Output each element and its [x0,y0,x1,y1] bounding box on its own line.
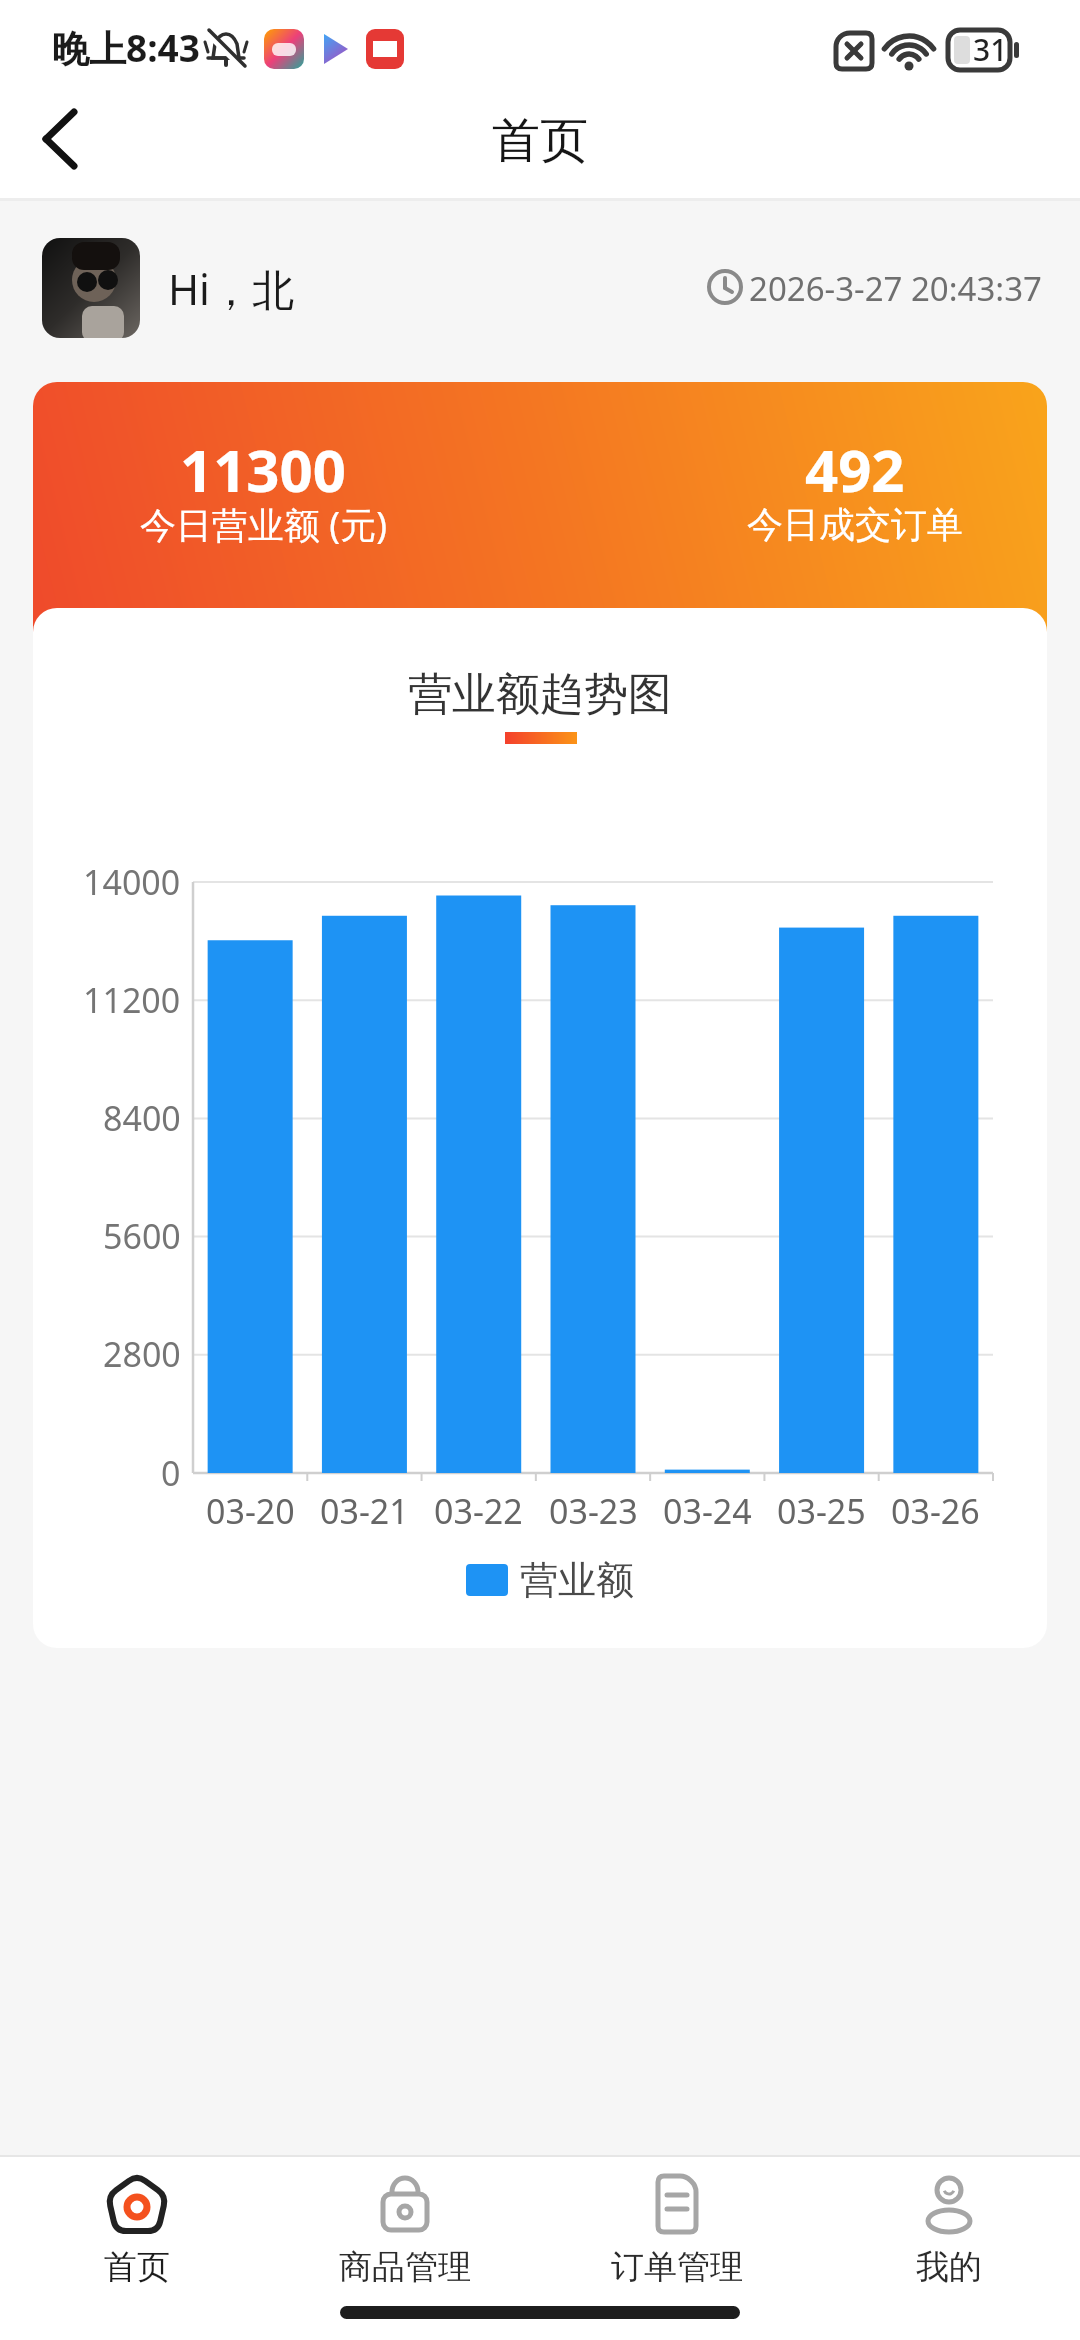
button[interactable] [42,238,140,338]
staticText: 31 [973,29,1008,70]
staticText: 03-22 [434,1488,523,1534]
button[interactable]: 订单管理 [567,2172,787,2330]
button[interactable]: 我的 [839,2172,1059,2330]
staticText: Hi，北 [168,260,294,317]
staticText: 2026-3-27 20:43:37 [749,266,1042,311]
staticText: 我的 [916,2246,982,2288]
staticText: 营业额 [520,1556,634,1604]
staticText: 492 [805,430,905,500]
staticText: 订单管理 [611,2246,743,2288]
staticText: 03-21 [320,1488,409,1534]
staticText: 8400 [103,1095,181,1141]
staticText: 商品管理 [339,2246,471,2288]
button[interactable]: 11300 [33,382,1047,632]
staticText: 今日营业额 (元) [140,500,387,548]
staticText: 今日成交订单 [747,502,963,547]
button[interactable] [20,100,100,180]
staticText: 03-24 [663,1488,752,1534]
button[interactable]: 首页 [27,2172,247,2330]
staticText: 晚上8:43 [52,22,200,72]
staticText: 首页 [104,2246,170,2288]
staticText: 03-20 [206,1488,295,1534]
staticText: 03-26 [891,1488,980,1534]
staticText: 03-25 [777,1488,866,1534]
button[interactable]: 商品管理 [295,2172,515,2330]
staticText: 营业额趋势图 [408,667,672,722]
staticText: 5600 [103,1213,181,1259]
staticText: 11200 [83,977,181,1023]
staticText: 首页 [492,111,588,171]
staticText: 11300 [180,430,346,500]
staticText: 14000 [83,859,181,905]
staticText: 03-23 [549,1488,638,1534]
staticText: 2800 [103,1331,181,1377]
staticText: 0 [161,1450,181,1496]
